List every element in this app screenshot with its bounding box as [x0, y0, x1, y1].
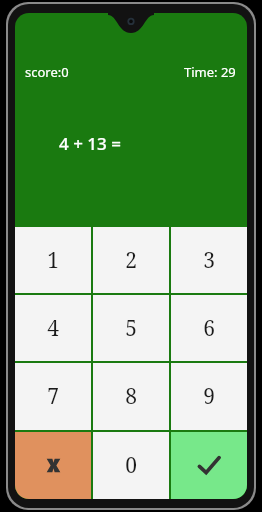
staticText: 4 + 13 = [59, 132, 121, 155]
staticText: 1 [47, 246, 59, 275]
button[interactable]: 2 [93, 227, 169, 293]
staticText: 6 [203, 314, 215, 343]
staticText: 8 [125, 382, 137, 411]
button[interactable]: 6 [171, 295, 247, 361]
staticText: 2 [125, 246, 137, 275]
button[interactable]: 9 [171, 363, 247, 430]
staticText: 9 [203, 382, 215, 411]
button[interactable]: 0 [93, 432, 169, 499]
staticText: 5 [125, 314, 137, 343]
button[interactable]: 7 [15, 363, 91, 430]
button[interactable]: 3 [171, 227, 247, 293]
button[interactable]: 1 [15, 227, 91, 293]
staticText: 7 [47, 382, 59, 411]
staticText: 3 [203, 246, 215, 275]
staticText: score:0 [25, 63, 69, 81]
staticText: 4 [47, 314, 59, 343]
button[interactable]: Clear [15, 432, 91, 499]
staticText: Time: 29 [184, 63, 236, 81]
button[interactable]: Submit answer [171, 432, 247, 499]
button[interactable]: 4 [15, 295, 91, 361]
button[interactable]: 8 [93, 363, 169, 430]
staticText: 0 [125, 451, 137, 480]
button[interactable]: 5 [93, 295, 169, 361]
